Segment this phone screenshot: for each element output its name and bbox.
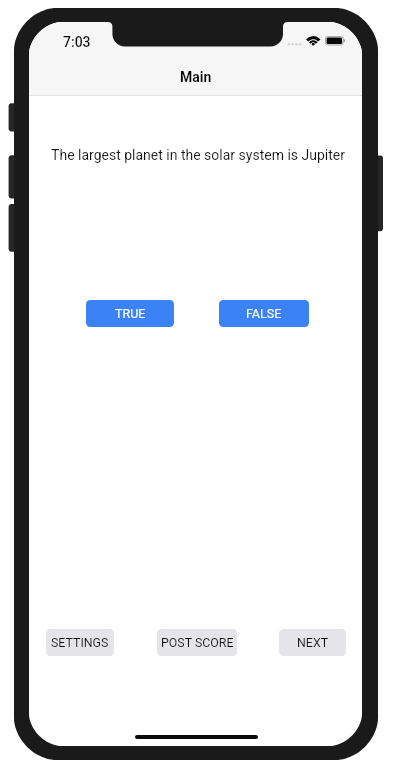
button[interactable]: FALSE: [219, 300, 309, 327]
staticText: POST SCORE: [161, 635, 234, 650]
button[interactable]: POST SCORE: [157, 629, 237, 656]
button[interactable]: NEXT: [279, 629, 346, 656]
staticText: Main: [180, 69, 212, 85]
staticText: SETTINGS: [51, 635, 109, 650]
staticText: TRUE: [115, 306, 146, 321]
button[interactable]: SETTINGS: [46, 629, 114, 656]
staticText: 7:03: [63, 34, 91, 50]
staticText: FALSE: [246, 306, 282, 321]
staticText: NEXT: [297, 635, 329, 650]
other: Signal, Wi-Fi and battery status: [281, 30, 351, 52]
staticText: The largest planet in the solar system i…: [51, 147, 345, 163]
button[interactable]: TRUE: [86, 300, 174, 327]
